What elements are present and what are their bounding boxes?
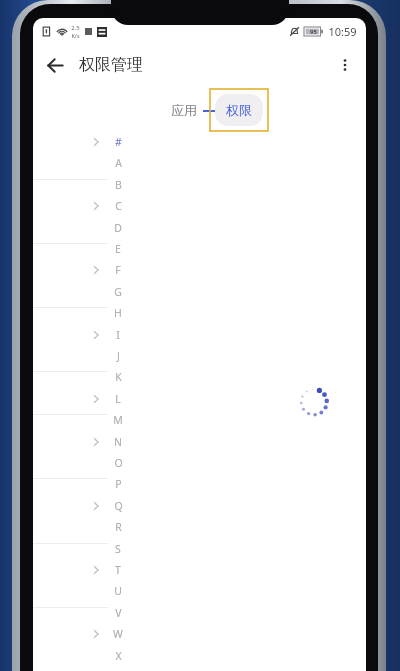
button[interactable]: Expand group I [88,327,104,343]
staticText: W [113,627,123,641]
button[interactable]: J [109,348,127,364]
staticText: A [115,156,122,170]
button[interactable]: Expand group N [88,434,104,450]
button[interactable]: N [109,434,127,450]
button[interactable]: I [109,327,127,343]
button[interactable]: # [109,134,127,150]
button[interactable]: B [109,177,127,193]
staticText: # [115,135,122,149]
staticText: 2.5 [71,24,80,32]
staticText: F [115,263,121,277]
staticText: 权限 [226,102,252,118]
button[interactable]: S [109,541,127,557]
button[interactable]: L [109,391,127,407]
staticText: B [115,178,122,192]
button[interactable]: U [109,583,127,599]
button[interactable]: A [109,155,127,171]
staticText: T [115,563,121,577]
staticText: M [113,413,123,427]
button[interactable]: Q [109,498,127,514]
staticText: K/s [71,32,80,39]
staticText: N [114,435,122,449]
staticText: 10:59 [328,24,357,39]
button[interactable]: C [109,198,127,214]
staticText: I [116,328,120,342]
button[interactable]: V [109,605,127,621]
staticText: O [114,456,123,470]
button[interactable]: Expand group C [88,198,104,214]
button[interactable]: E [109,241,127,257]
button[interactable]: Expand group L [88,391,104,407]
button[interactable]: 应用 [165,98,203,122]
button[interactable]: Expand group F [88,262,104,278]
button[interactable]: O [109,455,127,471]
staticText: K [115,370,122,384]
button[interactable]: Expand group W [88,626,104,642]
staticText: H [114,306,122,320]
staticText: G [114,285,122,299]
staticText: 95 [310,28,317,36]
staticText: L [115,392,121,406]
button[interactable]: Expand group # [88,134,104,150]
staticText: P [115,477,122,491]
button[interactable]: Back [38,48,72,82]
staticText: Q [114,499,123,513]
button[interactable]: K [109,369,127,385]
button[interactable]: X [109,648,127,664]
button[interactable]: D [109,220,127,236]
button[interactable]: P [109,476,127,492]
button[interactable]: Expand group T [88,562,104,578]
button[interactable]: W [109,626,127,642]
button[interactable]: H [109,305,127,321]
staticText: V [115,606,122,620]
staticText: R [115,520,122,534]
staticText: 应用 [171,102,197,118]
button[interactable]: More options [329,49,361,81]
staticText: U [114,584,122,598]
button[interactable]: T [109,562,127,578]
staticText: E [115,242,121,256]
staticText: S [115,542,121,556]
button[interactable]: Expand group Q [88,498,104,514]
staticText: J [117,349,120,363]
button[interactable]: R [109,519,127,535]
staticText: 权限管理 [79,55,143,75]
button[interactable]: 权限 [215,94,263,126]
staticText: X [115,649,122,663]
staticText: C [115,199,122,213]
button[interactable]: G [109,284,127,300]
staticText: D [114,221,122,235]
button[interactable]: F [109,262,127,278]
button[interactable]: M [109,412,127,428]
